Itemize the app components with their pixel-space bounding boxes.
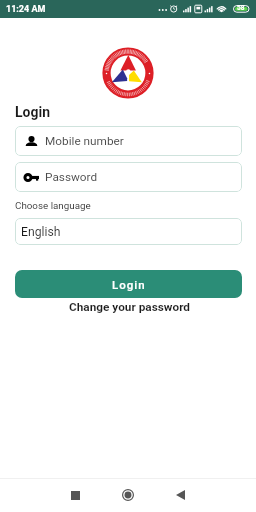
button[interactable]: Mobile number: [15, 126, 242, 156]
button[interactable]: Login: [15, 270, 242, 298]
staticText: Password: [45, 170, 98, 184]
button[interactable]: English: [15, 218, 242, 245]
staticText: Login: [112, 278, 146, 291]
button[interactable]: Home: [112, 479, 144, 511]
button[interactable]: Recent apps: [59, 479, 91, 511]
button[interactable]: Change your password: [66, 297, 193, 317]
button[interactable]: Back: [164, 479, 196, 511]
staticText: 58: [237, 4, 245, 12]
button[interactable]: Password: [15, 162, 242, 192]
staticText: English: [21, 225, 61, 239]
staticText: 11:24 AM: [6, 4, 46, 15]
staticText: Mobile number: [45, 134, 124, 148]
staticText: Login: [15, 104, 51, 120]
staticText: Choose language: [15, 200, 91, 211]
